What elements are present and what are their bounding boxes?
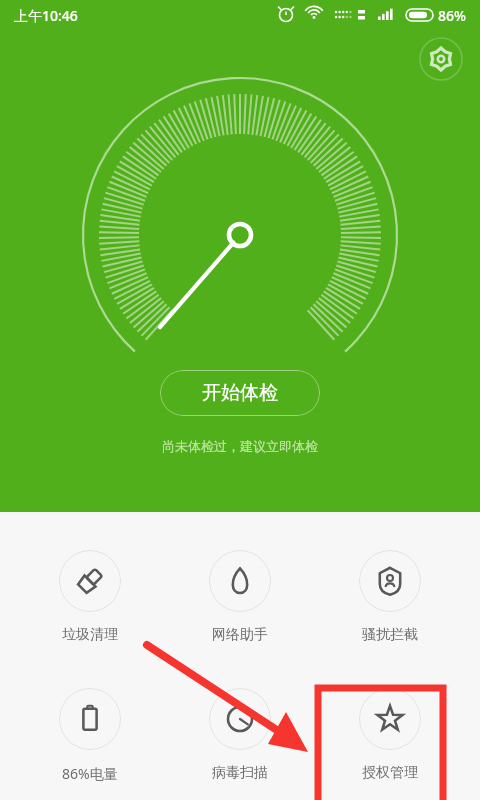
button[interactable]: 骚扰拦截 [330, 550, 450, 644]
staticText: 上午10:46 [14, 6, 78, 25]
button[interactable]: 86%电量 [30, 688, 150, 783]
staticText: 86% [438, 6, 466, 25]
staticText: 授权管理 [362, 764, 418, 782]
staticText: 86%电量 [62, 764, 118, 783]
button[interactable]: 病毒扫描 [180, 688, 300, 782]
button[interactable]: 垃圾清理 [30, 550, 150, 644]
button[interactable]: 开始体检 [160, 370, 320, 416]
button[interactable]: 授权管理 [330, 688, 450, 782]
button[interactable]: Settings [418, 36, 464, 82]
staticText: 骚扰拦截 [362, 626, 418, 644]
staticText: 病毒扫描 [212, 764, 268, 782]
staticText: 尚未体检过，建议立即体检 [162, 438, 318, 454]
staticText: 开始体检 [202, 381, 278, 405]
button[interactable]: 网络助手 [180, 550, 300, 644]
staticText: 垃圾清理 [62, 626, 118, 644]
staticText: 网络助手 [212, 626, 268, 644]
